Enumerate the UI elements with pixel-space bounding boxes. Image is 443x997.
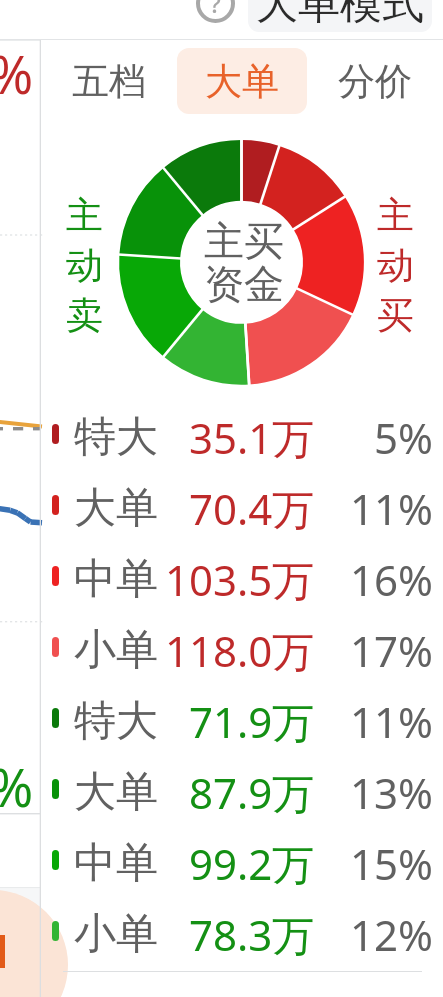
staticText: 中单 (74, 837, 158, 890)
staticText: 大单 (74, 766, 158, 819)
staticText: 118.0万 (165, 622, 315, 679)
staticText: 71.9万 (189, 693, 315, 750)
staticText: 特大 (74, 411, 158, 464)
button[interactable]: 中单 (41, 824, 443, 895)
staticText: 主 (377, 192, 414, 239)
staticText: 资金 (204, 259, 284, 309)
staticText: 13% (350, 764, 433, 821)
button[interactable]: 中单 (41, 540, 443, 611)
staticText: 分价 (338, 58, 412, 105)
button[interactable]: 五档 (44, 48, 174, 114)
staticText: 11% (350, 693, 433, 750)
button[interactable]: 大单 (177, 48, 307, 114)
staticText: 103.5万 (165, 551, 315, 608)
button[interactable]: 大单模式 (248, 0, 432, 32)
staticText: 中单 (74, 553, 158, 606)
staticText: 特大 (74, 695, 158, 748)
staticText: 17% (350, 622, 433, 679)
staticText: 11% (350, 480, 433, 537)
button[interactable]: 分价 (310, 48, 440, 114)
button[interactable]: 大单 (41, 469, 443, 540)
staticText: 12% (350, 906, 433, 963)
staticText: 动 (66, 242, 103, 289)
staticText: 5% (374, 409, 433, 466)
staticText: 大单模式 (256, 0, 424, 31)
staticText: % (0, 38, 31, 109)
button[interactable]: 小单 (41, 895, 443, 966)
staticText: 五档 (72, 58, 146, 105)
staticText: 16% (350, 551, 433, 608)
staticText: 主 (66, 192, 103, 239)
staticText: 买 (377, 292, 414, 339)
staticText: 小单 (74, 624, 158, 677)
staticText: 99.2万 (189, 835, 315, 892)
button[interactable]: 特大 (41, 682, 443, 753)
staticText: 87.9万 (189, 764, 315, 821)
staticText: 70.4万 (189, 480, 315, 537)
button[interactable]: 大单 (41, 753, 443, 824)
staticText: 大单 (205, 58, 279, 105)
staticText: 78.3万 (189, 906, 315, 963)
staticText: ? (210, 0, 221, 20)
staticText: 小单 (74, 908, 158, 961)
staticText: % (0, 751, 31, 822)
staticText: 大单 (74, 482, 158, 535)
staticText: 15% (350, 835, 433, 892)
staticText: 35.1万 (189, 409, 315, 466)
staticText: 动 (377, 242, 414, 289)
button[interactable]: 小单 (41, 611, 443, 682)
button[interactable]: 特大 (41, 398, 443, 469)
staticText: 主买 (204, 216, 284, 266)
staticText: 卖 (66, 292, 103, 339)
button[interactable]: Help (196, 0, 235, 23)
